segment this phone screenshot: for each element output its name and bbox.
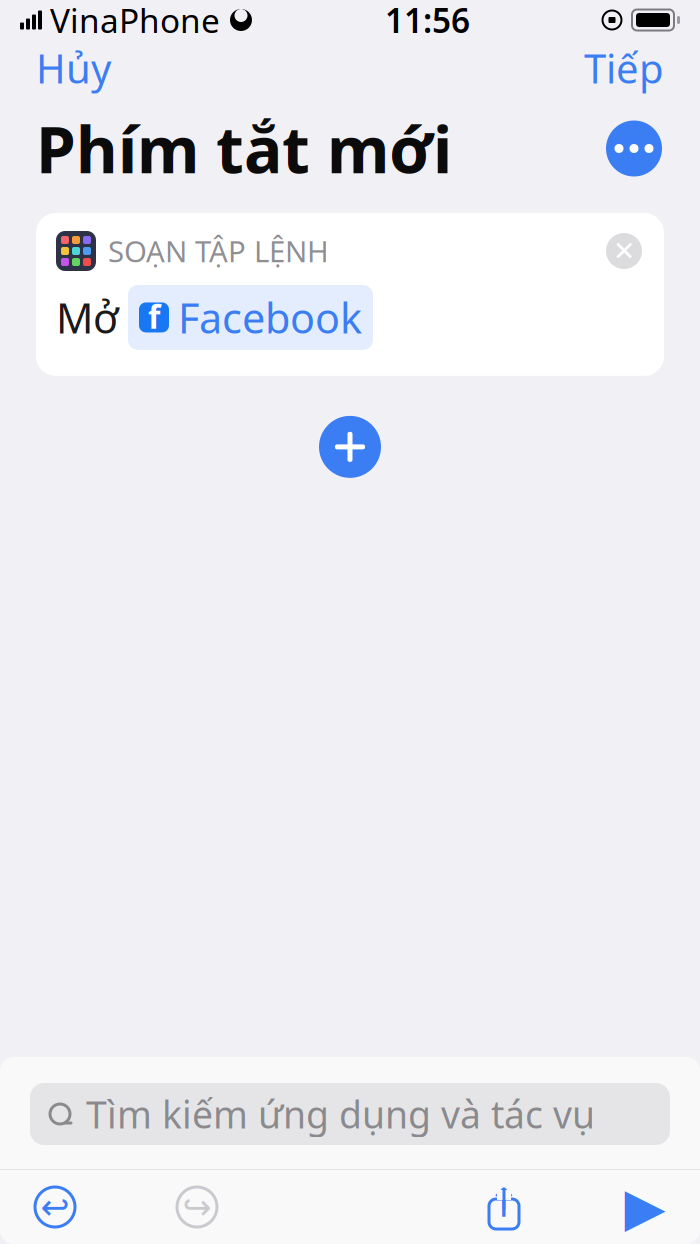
staticText: f	[148, 295, 160, 338]
button[interactable]: Play	[622, 1184, 668, 1230]
button[interactable]: Tìm kiếm ứng dụng và tác vụ	[30, 1083, 670, 1145]
button[interactable]: More options	[604, 118, 664, 178]
button[interactable]: Hủy	[32, 35, 115, 100]
button[interactable]: Tiếp	[580, 35, 668, 100]
staticText: 11:56	[385, 0, 470, 42]
button[interactable]: Remove action	[604, 231, 644, 271]
staticText: Tiếp	[584, 41, 664, 94]
button[interactable]: Share	[482, 1183, 526, 1231]
button[interactable]: Undo	[32, 1184, 78, 1230]
staticText: SOẠN TẬP LỆNH	[108, 231, 329, 270]
button[interactable]: Redo	[174, 1184, 220, 1230]
button[interactable]: f	[128, 285, 373, 350]
staticText: ✕	[613, 236, 635, 266]
staticText: Mở	[56, 290, 118, 345]
staticText: ↑	[487, 1180, 521, 1226]
staticText: VinaPhone	[50, 0, 220, 42]
staticText: Phím tắt mới	[36, 106, 452, 191]
staticText: Hủy	[36, 41, 111, 94]
staticText: ↩	[40, 1187, 69, 1227]
staticText: ↪	[182, 1187, 211, 1227]
button[interactable]: Add action	[315, 412, 385, 482]
staticText: Facebook	[178, 290, 362, 345]
staticText: Tìm kiếm ứng dụng và tác vụ	[86, 1089, 595, 1139]
staticText: ▶	[624, 1177, 665, 1237]
